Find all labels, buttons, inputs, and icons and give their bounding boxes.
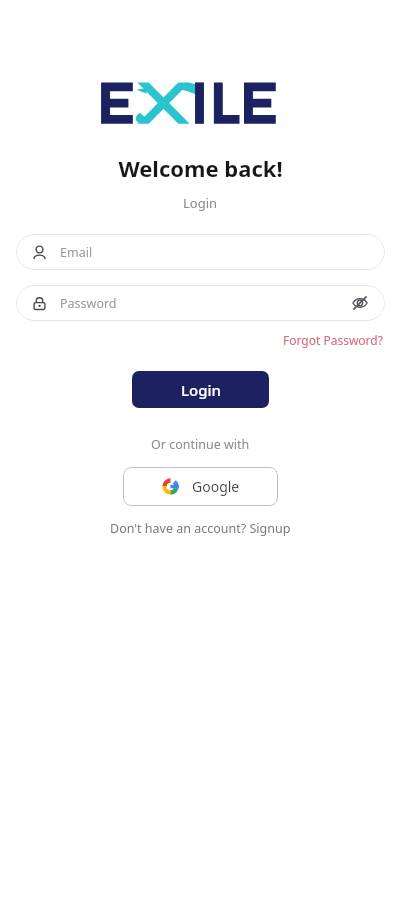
staticText: Login — [183, 194, 218, 212]
button[interactable]: Email — [16, 234, 385, 270]
staticText: Welcome back! — [118, 153, 283, 183]
staticText: Password — [60, 295, 349, 312]
staticText: Or continue with — [151, 436, 250, 453]
staticText: Email — [60, 244, 93, 261]
staticText: Google — [192, 477, 240, 496]
button[interactable]: Forgot Password? — [281, 330, 385, 350]
staticText: Login — [181, 380, 221, 400]
staticText: Don't have an account? Signup — [110, 520, 291, 537]
button[interactable]: Show password — [349, 292, 371, 314]
button[interactable]: Password — [16, 285, 385, 321]
button[interactable]: Don't have an account? Signup — [106, 518, 295, 539]
button[interactable]: Login — [132, 371, 269, 408]
button[interactable]: Google — [123, 467, 278, 506]
staticText: Forgot Password? — [283, 332, 383, 348]
